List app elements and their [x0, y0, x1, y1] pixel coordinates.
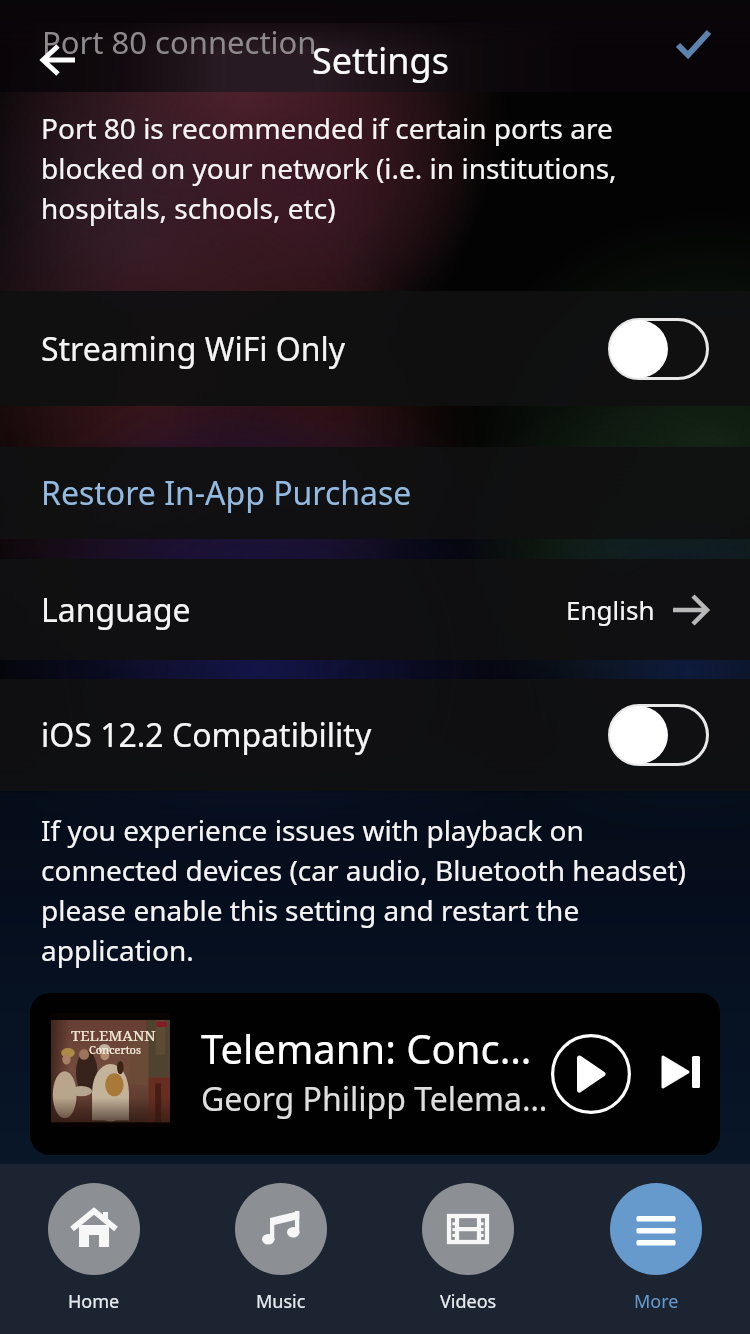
button[interactable]: Back [28, 34, 76, 78]
staticText: TELEMANN [71, 1025, 156, 1045]
staticText: Settings [312, 36, 449, 85]
button[interactable]: Toggle off [608, 318, 709, 380]
button[interactable]: More [562, 1164, 750, 1334]
staticText: Port 80 is recommended if certain ports … [41, 109, 713, 228]
staticText: More [634, 1289, 679, 1314]
button[interactable]: Videos [374, 1164, 562, 1334]
button[interactable]: TELEMANN [30, 993, 720, 1155]
staticText: Concertos [89, 1042, 141, 1057]
staticText: Restore In-App Purchase [41, 471, 412, 515]
staticText: Home [68, 1289, 120, 1314]
other: Choose language [673, 595, 709, 625]
button[interactable]: Toggle off [608, 704, 709, 766]
staticText: Streaming WiFi Only [41, 327, 346, 371]
button[interactable]: Done [670, 24, 714, 68]
staticText: Videos [440, 1289, 497, 1314]
staticText: English [566, 592, 655, 627]
button[interactable]: Next track [661, 1055, 701, 1093]
staticText: iOS 12.2 Compatibility [41, 713, 372, 757]
staticText: Language [41, 588, 191, 632]
staticText: Georg Philipp Telema… [201, 1077, 548, 1121]
button[interactable]: Language [0, 559, 750, 660]
button[interactable]: Streaming WiFi Only [0, 291, 750, 406]
button[interactable]: Restore In-App Purchase [0, 447, 750, 539]
staticText: Port 80 connection [42, 21, 317, 63]
staticText: Music [256, 1289, 306, 1314]
staticText: If you experience issues with playback o… [41, 811, 713, 970]
button[interactable]: Home [0, 1164, 187, 1334]
button[interactable]: Play [551, 1034, 631, 1114]
button[interactable]: Music [187, 1164, 374, 1334]
staticText: Telemann: Conc… [201, 1021, 532, 1075]
button[interactable]: iOS 12.2 Compatibility [0, 679, 750, 791]
